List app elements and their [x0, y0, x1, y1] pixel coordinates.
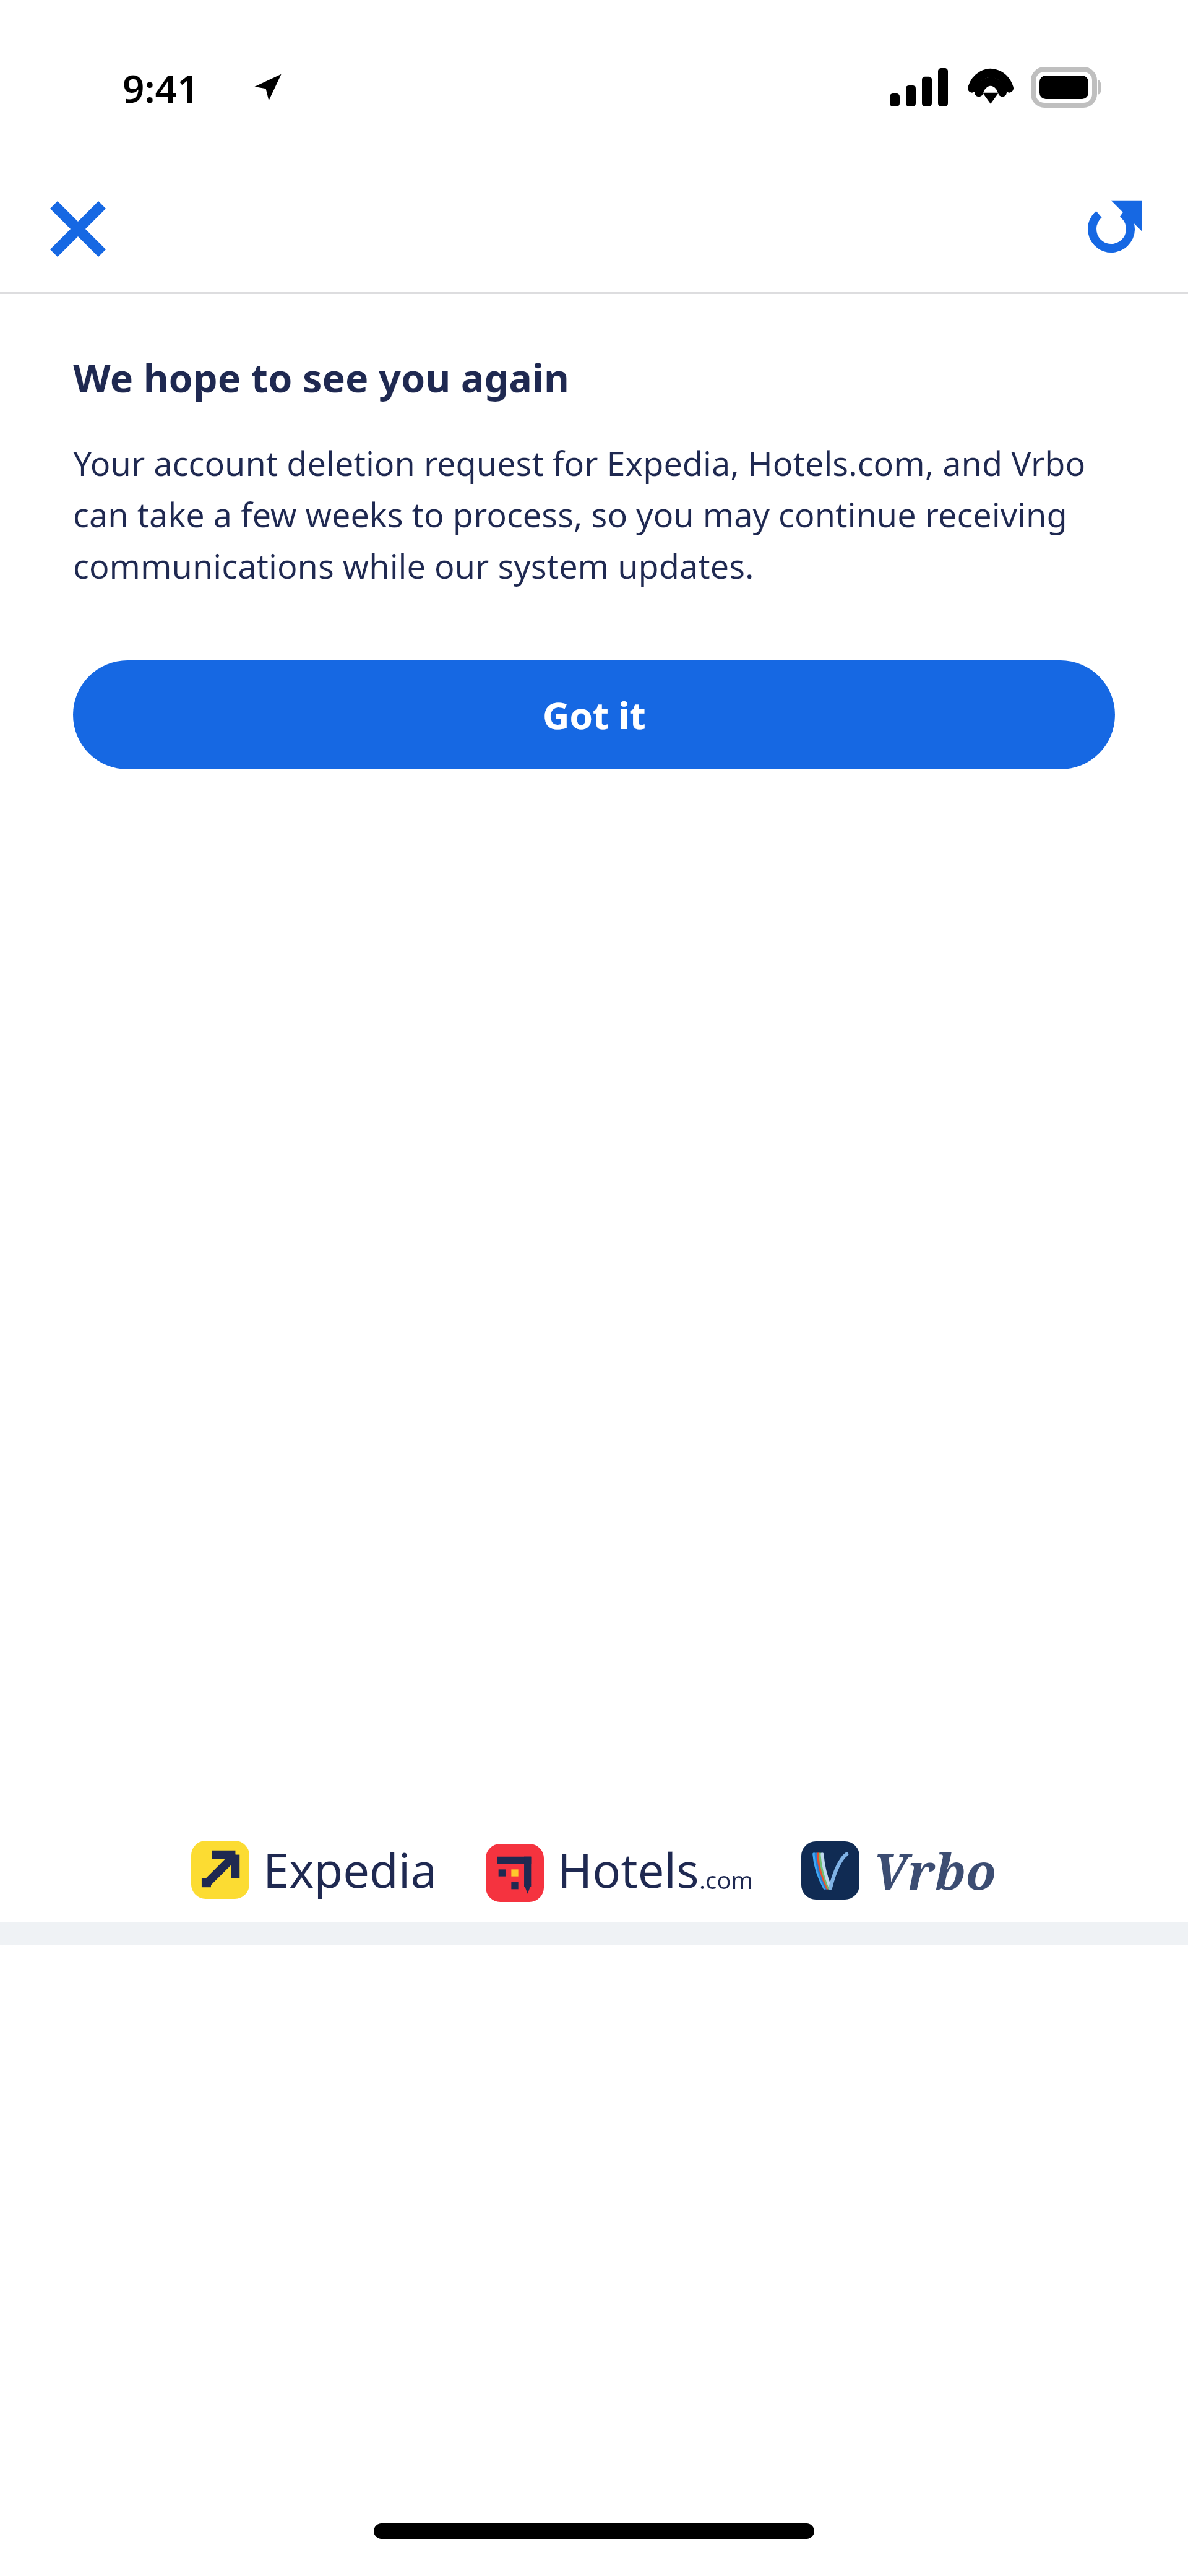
button[interactable]: Close: [43, 194, 113, 264]
staticText: 9:41: [123, 62, 199, 114]
staticText: We hope to see you again: [73, 351, 569, 404]
staticText: Got it: [543, 689, 646, 740]
staticText: Hotels: [557, 1838, 699, 1902]
staticText: Vrbo: [873, 1836, 997, 1904]
staticText: Expedia: [263, 1838, 437, 1902]
button[interactable]: Got it: [73, 660, 1115, 769]
staticText: Your account deletion request for Expedi…: [73, 440, 1132, 589]
staticText: .com: [699, 1864, 753, 1896]
button[interactable]: Refresh: [1077, 194, 1146, 264]
